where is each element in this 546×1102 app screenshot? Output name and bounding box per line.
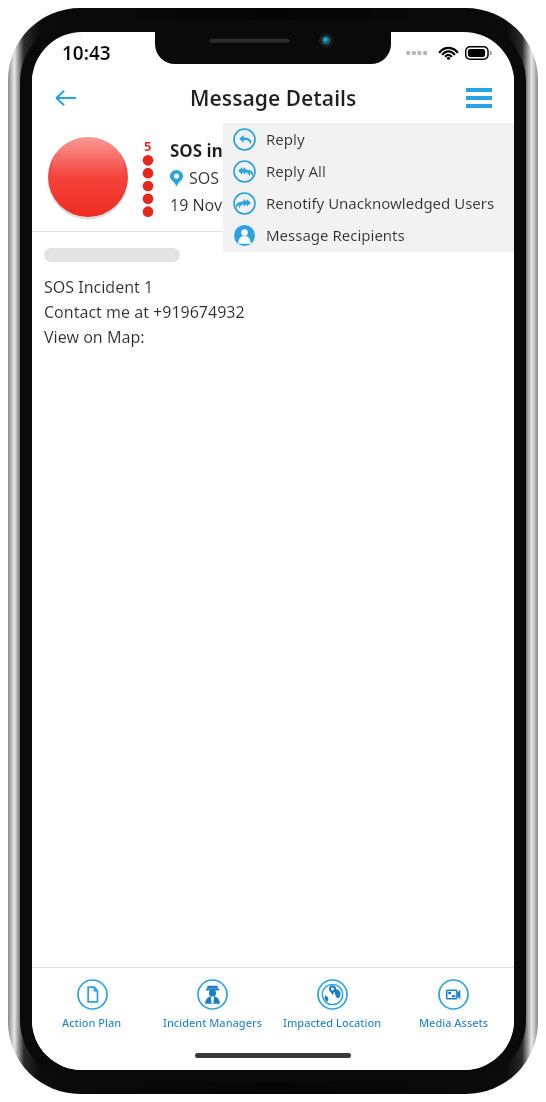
staticText: Action Plan (62, 1015, 122, 1030)
staticText: Message Details (190, 84, 357, 113)
staticText: Impacted Location (283, 1015, 382, 1030)
button[interactable]: Reply All (223, 155, 514, 187)
staticText: Reply (266, 129, 305, 149)
staticText: 10:43 (62, 40, 111, 66)
staticText: Renotify Unacknowledged Users (266, 193, 495, 213)
button[interactable]: Renotify Unacknowledged Users (223, 187, 514, 219)
button[interactable]: Media Assets (393, 968, 514, 1040)
staticText: View on Map: (44, 326, 145, 348)
button[interactable]: Reply (223, 123, 514, 155)
button[interactable]: Incident Managers (152, 968, 272, 1040)
button[interactable]: Action Plan (32, 968, 152, 1040)
staticText: SOS Location (189, 167, 288, 189)
staticText: Message Recipients (266, 225, 405, 245)
staticText: 19 Nov 2021 (170, 194, 263, 216)
staticText: Incident Managers (163, 1015, 262, 1030)
button[interactable]: Menu (458, 77, 500, 119)
button[interactable]: Message Recipients (223, 219, 514, 251)
staticText: 5 (144, 137, 152, 155)
button[interactable]: Back (44, 76, 88, 120)
button[interactable]: Impacted Location (272, 968, 393, 1040)
staticText: Contact me at +919674932 (44, 301, 245, 323)
staticText: SOS Incident 1 (44, 276, 154, 298)
staticText: SOS incident (170, 139, 276, 162)
staticText: Media Assets (419, 1015, 489, 1030)
staticText: Reply All (266, 161, 326, 181)
